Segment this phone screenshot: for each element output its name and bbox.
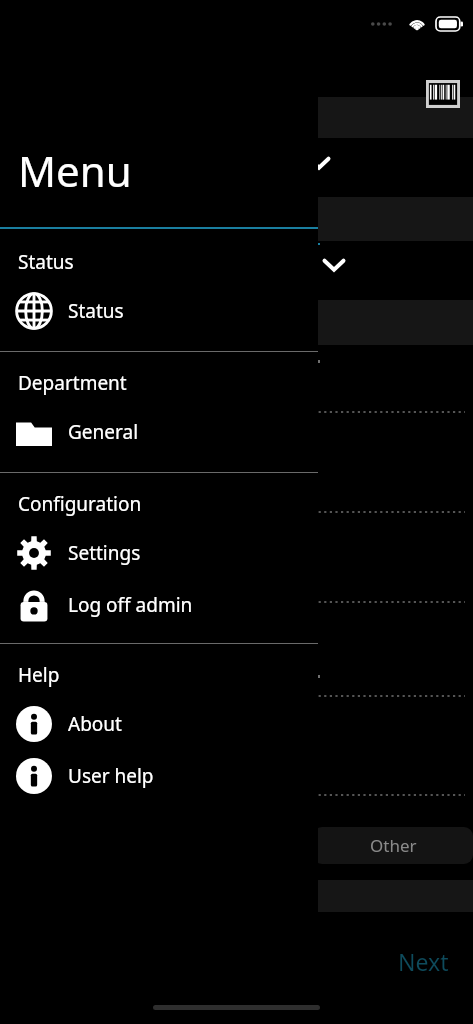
- staticText: Settings: [68, 540, 141, 566]
- button[interactable]: Scan barcode: [421, 72, 465, 116]
- staticText: General: [68, 419, 139, 445]
- button[interactable]: General: [0, 406, 318, 458]
- staticText: Status: [18, 249, 74, 275]
- staticText: Other: [370, 834, 417, 857]
- button[interactable]: User help: [0, 750, 318, 802]
- button[interactable]: Settings: [0, 527, 318, 579]
- staticText: Department: [18, 370, 127, 396]
- button[interactable]: Next: [398, 946, 449, 977]
- button[interactable]: About: [0, 698, 318, 750]
- staticText: Log off admin: [68, 592, 193, 618]
- staticText: User help: [68, 763, 154, 789]
- button[interactable]: Other: [313, 827, 473, 864]
- staticText: Next: [398, 946, 449, 977]
- button[interactable]: Status: [0, 285, 318, 337]
- staticText: About: [68, 711, 122, 737]
- staticText: Help: [18, 662, 60, 688]
- staticText: Status: [68, 298, 124, 324]
- staticText: Configuration: [18, 491, 142, 517]
- button[interactable]: Log off admin: [0, 579, 318, 631]
- staticText: Menu: [18, 142, 132, 199]
